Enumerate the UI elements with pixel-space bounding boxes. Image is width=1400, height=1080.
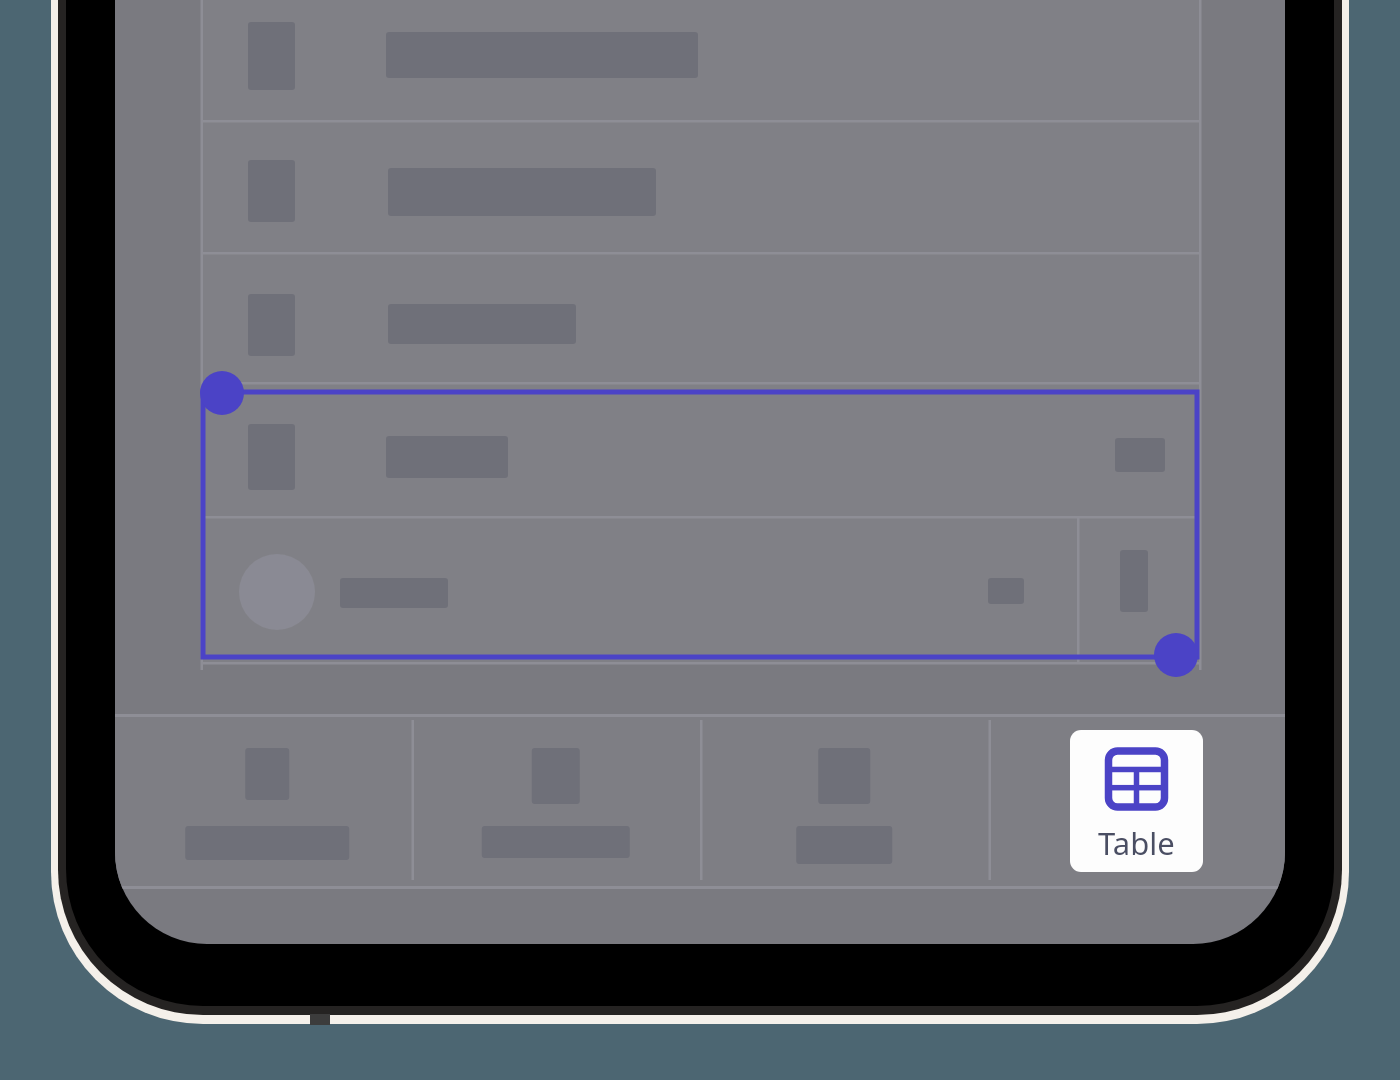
button[interactable]: Phone mockup with Table tool selected: [0, 0, 1400, 1080]
